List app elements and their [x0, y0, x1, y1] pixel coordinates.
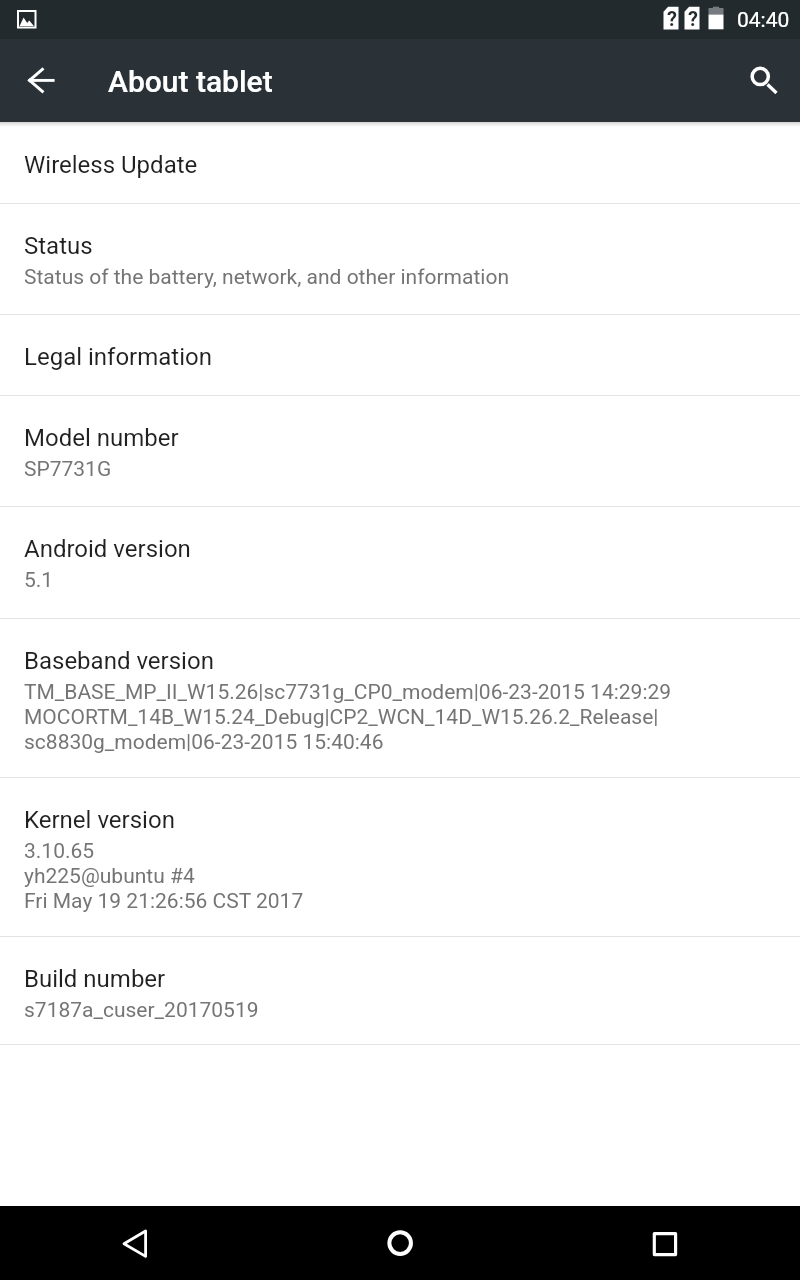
staticText: Model number: [24, 424, 179, 452]
button[interactable]: Legal information: [0, 314, 800, 395]
staticText: 5.1: [24, 568, 54, 593]
staticText: 3.10.65: [24, 839, 95, 864]
staticText: MOCORTM_14B_W15.24_Debug|CP2_WCN_14D_W15…: [24, 705, 659, 730]
button[interactable]: Baseband version: [0, 618, 800, 777]
staticText: s7187a_cuser_20170519: [24, 998, 259, 1023]
staticText: Legal information: [24, 343, 212, 371]
staticText: About tablet: [108, 64, 273, 99]
staticText: sc8830g_modem|06-23-2015 15:40:46: [24, 730, 384, 755]
button[interactable]: Model number: [0, 395, 800, 506]
staticText: TM_BASE_MP_II_W15.26|sc7731g_CP0_modem|0…: [24, 680, 672, 705]
staticText: Status of the battery, network, and othe…: [24, 265, 509, 290]
button[interactable]: Back: [86, 1206, 186, 1280]
button[interactable]: Status: [0, 203, 800, 314]
staticText: Android version: [24, 535, 191, 563]
button[interactable]: Home: [350, 1206, 450, 1280]
button[interactable]: Build number: [0, 936, 800, 1044]
staticText: SP7731G: [24, 457, 112, 482]
staticText: Baseband version: [24, 647, 214, 675]
button[interactable]: Navigate up: [0, 39, 84, 122]
staticText: ?: [667, 7, 677, 30]
staticText: Wireless Update: [24, 151, 198, 179]
button[interactable]: Wireless Update: [0, 122, 800, 203]
staticText: Fri May 19 21:26:56 CST 2017: [24, 889, 304, 914]
button[interactable]: Android version: [0, 506, 800, 618]
staticText: yh225@ubuntu #4: [24, 864, 195, 889]
staticText: Status: [24, 232, 93, 260]
staticText: Kernel version: [24, 806, 175, 834]
button[interactable]: Search: [718, 39, 800, 122]
staticText: 04:40: [737, 8, 790, 33]
staticText: Build number: [24, 965, 166, 993]
staticText: ?: [688, 7, 698, 30]
button[interactable]: Recent apps: [615, 1206, 715, 1280]
button[interactable]: Kernel version: [0, 777, 800, 936]
